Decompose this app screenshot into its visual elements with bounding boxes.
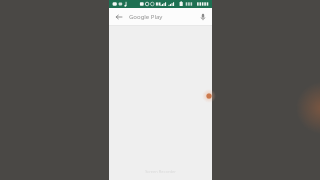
button[interactable]: Google Play	[129, 8, 196, 26]
staticText: Google Play	[129, 13, 163, 21]
button[interactable]: Back	[112, 10, 126, 24]
button[interactable]: Voice search	[196, 10, 210, 24]
